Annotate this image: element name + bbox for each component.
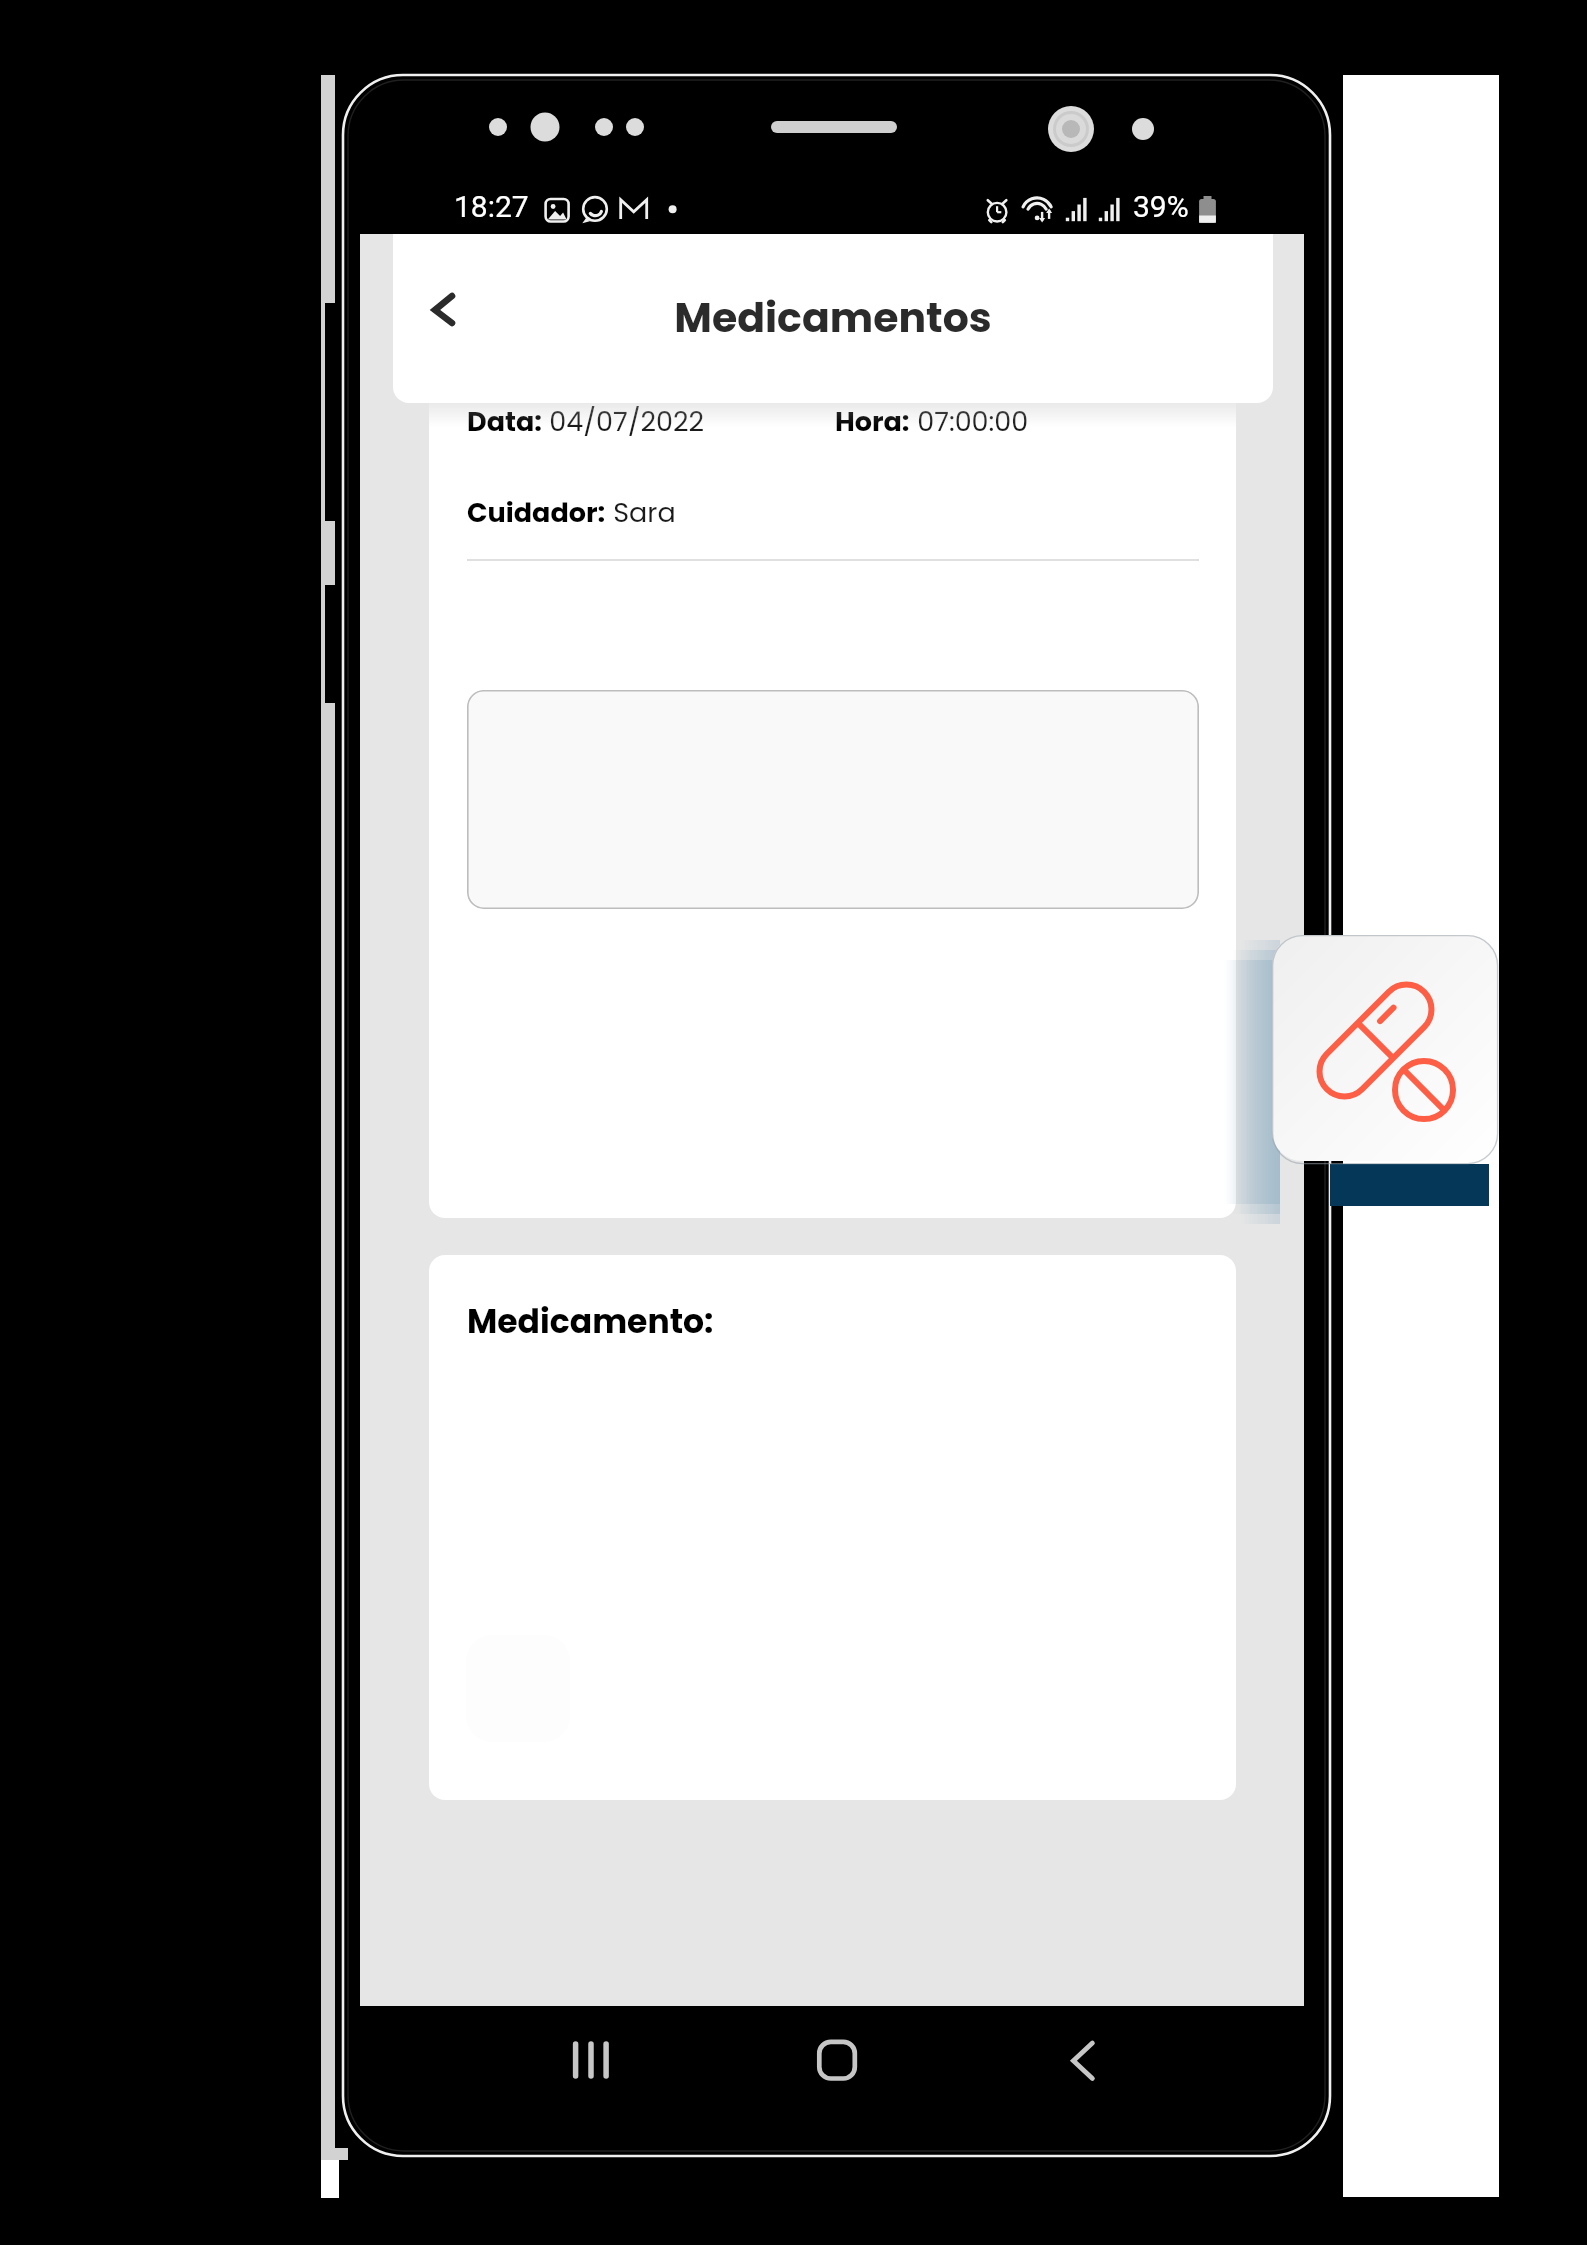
- button[interactable]: Recent apps: [518, 2018, 648, 2100]
- staticText: Sara: [606, 494, 676, 532]
- button[interactable]: Medicamento:: [429, 1255, 1236, 1800]
- button[interactable]: Back: [1018, 2018, 1148, 2100]
- staticText: Data:: [467, 403, 542, 441]
- staticText: Hora:: [835, 403, 910, 441]
- button[interactable]: Back: [405, 272, 483, 350]
- staticText: 04/07/2022: [542, 403, 705, 441]
- staticText: 39%: [1133, 189, 1189, 224]
- staticText: Cuidador:: [467, 494, 606, 532]
- staticText: Medicamentos: [393, 289, 1273, 346]
- button[interactable]: [467, 690, 1199, 909]
- button[interactable]: Home: [772, 2018, 902, 2100]
- button[interactable]: Medication app icon: [1272, 935, 1498, 1161]
- staticText: 07:00:00: [910, 403, 1029, 441]
- staticText: Medicamento:: [467, 1298, 714, 1344]
- staticText: 18:27: [454, 189, 529, 224]
